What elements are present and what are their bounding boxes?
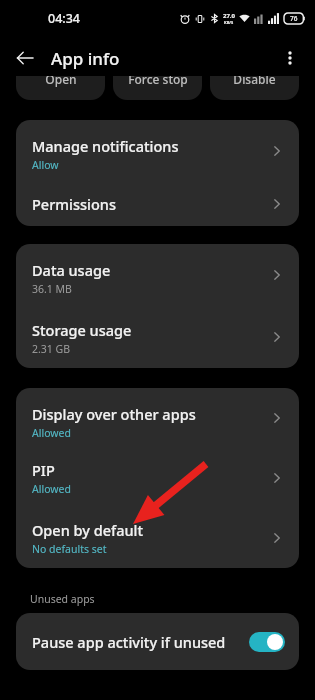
button[interactable]: Open by default [16, 508, 299, 568]
button[interactable]: Storage usage [16, 306, 299, 368]
button[interactable]: Permissions [16, 182, 299, 226]
button[interactable]: Force stop [113, 76, 202, 100]
staticText: Allowed [32, 426, 71, 440]
staticText: Display over other apps [32, 404, 196, 424]
staticText: Storage usage [32, 320, 132, 340]
staticText: Pause app activity if unused [32, 632, 226, 652]
staticText: Open [45, 76, 77, 87]
staticText: Allow [32, 158, 59, 172]
staticText: 2.31 GB [32, 342, 71, 356]
button[interactable]: Pause app activity if unused [16, 613, 299, 670]
button[interactable]: Display over other apps [16, 388, 299, 448]
staticText: Allowed [32, 482, 71, 496]
staticText: Data usage [32, 260, 111, 280]
button[interactable]: Disable [210, 76, 299, 100]
staticText: 36.1 MB [32, 282, 72, 296]
staticText: 04:34 [48, 10, 81, 27]
staticText: Force stop [128, 76, 188, 87]
staticText: App info [51, 47, 120, 70]
button[interactable]: Data usage [16, 244, 299, 306]
staticText: PIP [32, 460, 55, 480]
button[interactable]: PIP [16, 448, 299, 508]
staticText: KB/S [224, 20, 234, 25]
staticText: 27.0 [223, 12, 235, 20]
button[interactable]: Manage notifications [16, 120, 299, 182]
staticText: Disable [233, 76, 276, 87]
staticText: No defaults set [32, 542, 107, 556]
staticText: Open by default [32, 520, 144, 540]
staticText: Manage notifications [32, 136, 179, 156]
staticText: Unused apps [30, 592, 95, 606]
button[interactable]: Open [16, 76, 105, 100]
staticText: 76 [290, 14, 298, 23]
staticText: Permissions [32, 194, 116, 214]
button[interactable]: Back [8, 41, 42, 75]
button[interactable]: More options [273, 41, 307, 75]
